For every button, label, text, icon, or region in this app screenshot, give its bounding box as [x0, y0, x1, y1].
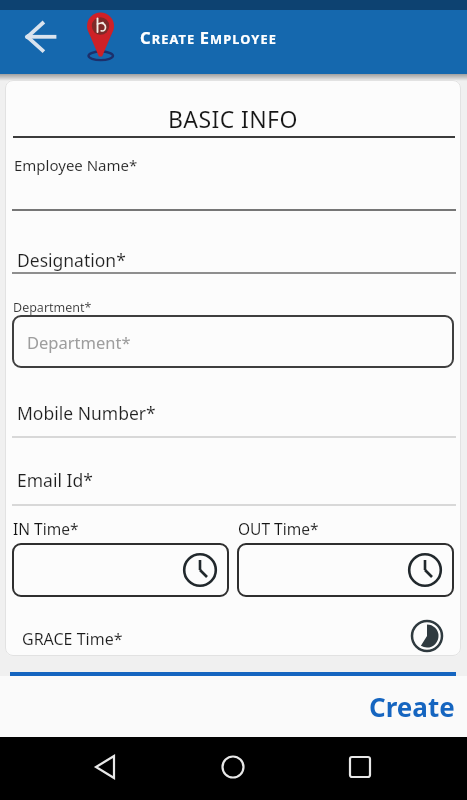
staticText: Email Id*: [17, 468, 93, 492]
staticText: Create: [369, 689, 455, 724]
staticText: GRACE Time*: [22, 628, 123, 650]
staticText: Designation*: [17, 248, 126, 272]
staticText: Employee Name*: [14, 155, 138, 175]
staticText: OUT Time*: [238, 518, 319, 539]
staticText: BASIC INFO: [168, 103, 298, 134]
staticText: Department*: [13, 299, 92, 316]
staticText: Department*: [27, 331, 131, 353]
staticText: IN Time*: [13, 518, 79, 539]
staticText: CREATE EMPLOYEE: [140, 26, 277, 48]
staticText: Mobile Number*: [17, 401, 156, 425]
